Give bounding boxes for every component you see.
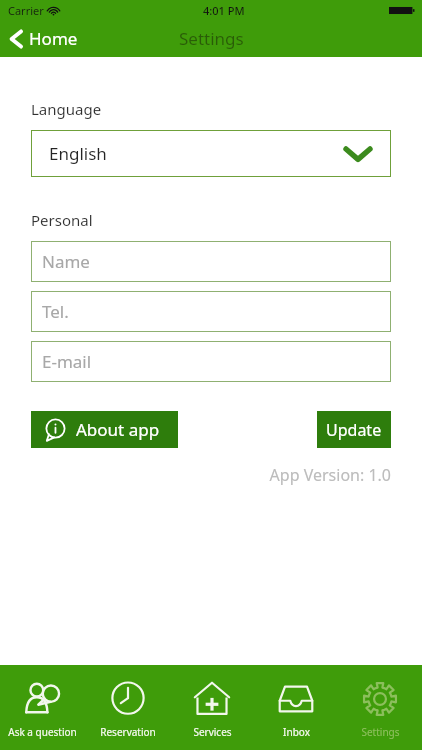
- staticText: Services: [193, 725, 232, 739]
- button[interactable]: Tel.: [31, 291, 391, 332]
- staticText: 4:01 PM: [203, 3, 245, 18]
- staticText: Home: [29, 27, 78, 50]
- staticText: English: [49, 142, 107, 165]
- button[interactable]: Services: [170, 665, 254, 750]
- button[interactable]: Reservation: [85, 665, 170, 750]
- staticText: Settings: [361, 725, 400, 739]
- staticText: Inbox: [283, 725, 310, 739]
- staticText: Update: [326, 419, 382, 441]
- button[interactable]: Update: [317, 411, 391, 448]
- button[interactable]: Inbox: [254, 665, 338, 750]
- button[interactable]: Settings: [338, 665, 422, 750]
- button[interactable]: English: [31, 130, 391, 177]
- button[interactable]: E-mail: [31, 341, 391, 382]
- staticText: Reservation: [100, 725, 156, 739]
- staticText: Personal: [31, 210, 93, 230]
- button[interactable]: Home: [0, 23, 90, 54]
- button[interactable]: Ask a question: [0, 665, 85, 750]
- staticText: Tel.: [42, 300, 69, 323]
- button[interactable]: Name: [31, 241, 391, 282]
- staticText: E-mail: [42, 350, 92, 373]
- staticText: About app: [76, 418, 160, 441]
- staticText: Language: [31, 99, 102, 119]
- staticText: Ask a question: [8, 725, 77, 739]
- staticText: App Version: 1.0: [31, 464, 391, 486]
- staticText: Settings: [179, 27, 244, 50]
- button[interactable]: About app: [31, 411, 178, 448]
- staticText: Carrier: [8, 3, 44, 18]
- staticText: Name: [42, 250, 90, 273]
